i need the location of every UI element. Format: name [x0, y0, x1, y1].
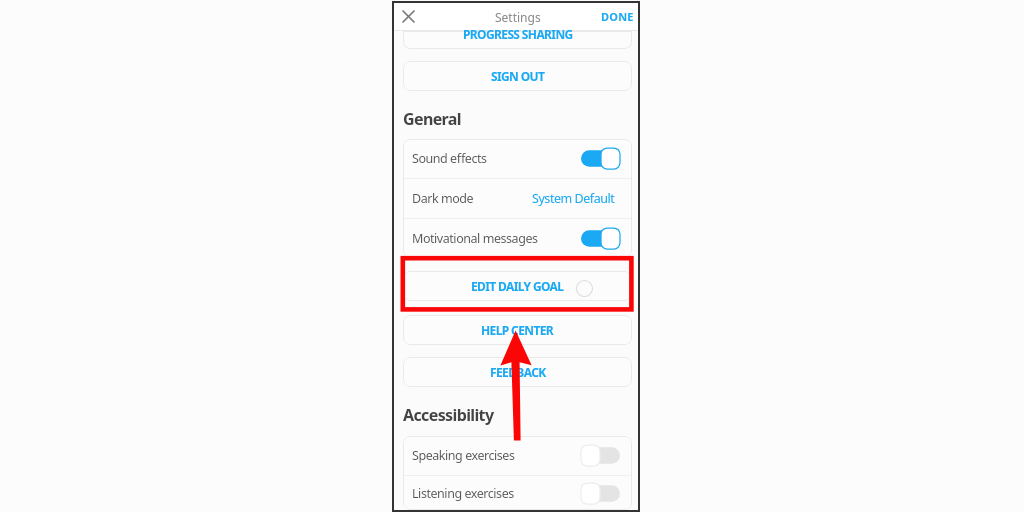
button[interactable]: SIGN OUT — [403, 61, 632, 91]
staticText: Accessibility — [403, 404, 494, 426]
staticText: FEEDBACK — [490, 364, 546, 380]
staticText: SIGN OUT — [491, 68, 545, 84]
button[interactable]: Motivational messages — [403, 219, 632, 258]
staticText: PROGRESS SHARING — [463, 26, 573, 42]
staticText: Motivational messages — [412, 230, 538, 247]
button[interactable]: PROGRESS SHARING — [403, 31, 632, 49]
staticText: DONE — [601, 9, 634, 24]
button[interactable]: Listening exercises — [403, 476, 632, 510]
staticText: Listening exercises — [412, 485, 514, 502]
staticText: System Default — [532, 190, 615, 207]
staticText: EDIT DAILY GOAL — [471, 278, 564, 294]
staticText: Dark mode — [412, 190, 474, 207]
button[interactable]: Dark mode — [403, 179, 632, 218]
button[interactable]: Toggle off — [581, 483, 620, 504]
button[interactable]: DONE — [594, 3, 638, 30]
button[interactable]: Speaking exercises — [403, 436, 632, 475]
button[interactable]: Close — [396, 4, 420, 28]
staticText: Sound effects — [412, 150, 487, 167]
button[interactable]: EDIT DAILY GOAL — [403, 271, 632, 301]
button[interactable]: HELP CENTER — [403, 315, 632, 345]
staticText: General — [403, 108, 461, 130]
button[interactable]: Toggle on — [581, 148, 620, 169]
staticText: Settings — [495, 9, 541, 25]
button[interactable]: Sound effects — [403, 139, 632, 178]
button[interactable]: Toggle off — [581, 445, 620, 466]
button[interactable]: FEEDBACK — [403, 357, 632, 387]
button[interactable]: Toggle on — [581, 228, 620, 249]
staticText: Speaking exercises — [412, 447, 515, 464]
staticText: HELP CENTER — [481, 322, 554, 338]
